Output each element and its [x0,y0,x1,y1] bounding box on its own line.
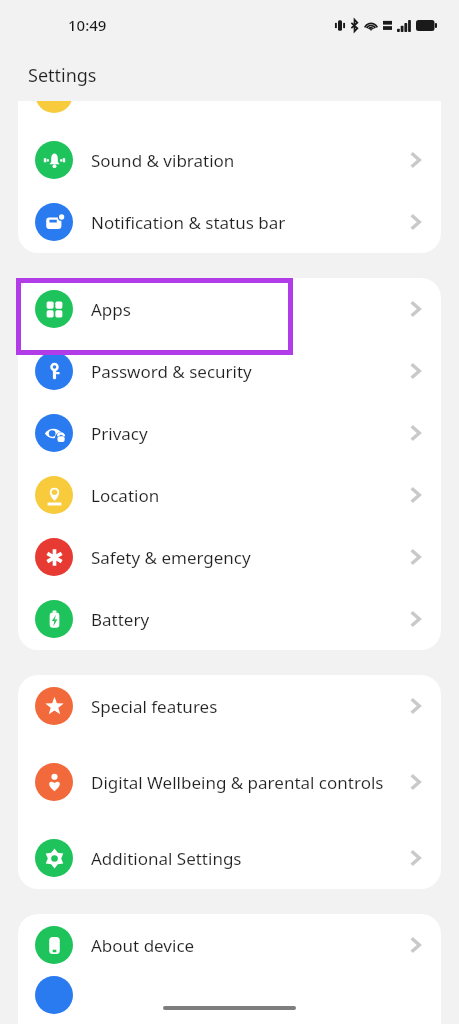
button[interactable]: Additional Settings [18,827,441,889]
staticText: Password & security [91,360,398,383]
button[interactable]: Location [18,464,441,526]
button[interactable]: Safety & emergency [18,526,441,588]
staticText: Additional Settings [91,847,398,870]
staticText: Battery [91,608,398,631]
staticText: About device [91,934,398,957]
button[interactable]: Special features [18,675,441,737]
staticText: Notification & status bar [91,211,398,234]
button[interactable]: Password & security [18,340,441,402]
staticText: Privacy [91,422,398,445]
button[interactable]: Notification & status bar [18,191,441,253]
staticText: Digital Wellbeing & parental controls [91,771,398,794]
staticText: 10:49 [68,15,107,35]
staticText: Location [91,484,398,507]
button[interactable]: Sound & vibration [18,129,441,191]
staticText: Settings [28,63,97,88]
staticText: Safety & emergency [91,546,398,569]
staticText: Sound & vibration [91,149,398,172]
button[interactable]: Digital Wellbeing & parental controls [18,737,441,827]
button[interactable]: Battery [18,588,441,650]
button[interactable]: Apps [18,278,441,340]
button[interactable]: About device [18,914,441,976]
staticText: Special features [91,695,398,718]
button[interactable]: Privacy [18,402,441,464]
staticText: Apps [91,298,398,321]
